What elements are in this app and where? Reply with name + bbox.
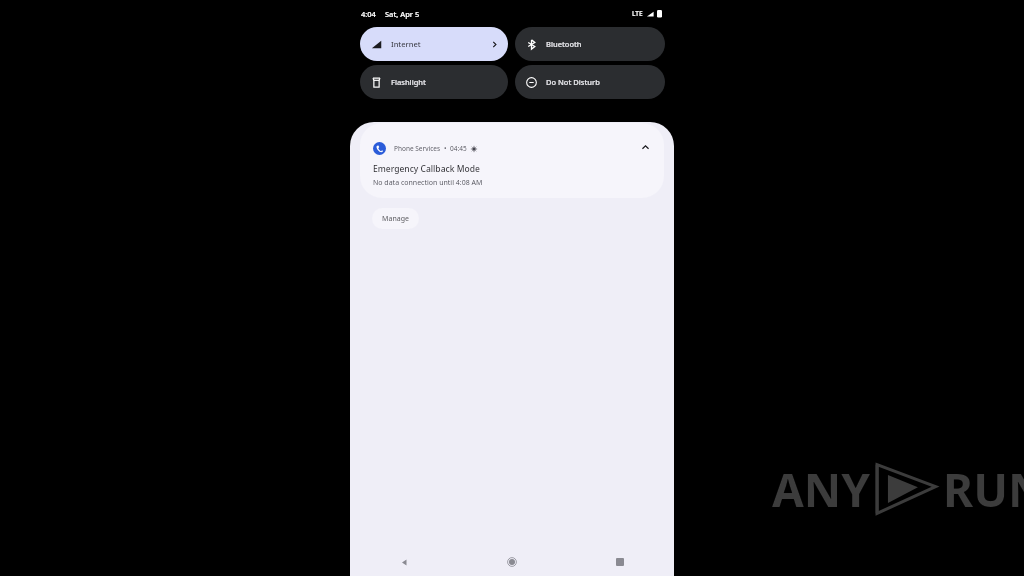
staticText: Phone Services [394, 144, 441, 153]
staticText: ANY [772, 458, 871, 520]
staticText: RUN [943, 458, 1024, 520]
staticText: Do Not Disturb [546, 77, 600, 87]
button[interactable]: Recent apps [566, 548, 674, 576]
button[interactable]: Home [458, 548, 566, 576]
button[interactable]: Do Not Disturb [515, 65, 665, 99]
staticText: Manage [382, 214, 409, 224]
button[interactable]: Back [350, 548, 458, 576]
staticText: • [444, 144, 447, 153]
staticText: No data connection until 4:08 AM [373, 178, 483, 188]
button[interactable]: Flashlight [360, 65, 508, 99]
staticText: Emergency Callback Mode [373, 163, 480, 175]
staticText: LTE [632, 9, 643, 18]
button[interactable]: Phone Services [360, 123, 664, 198]
staticText: Internet [391, 39, 421, 49]
button[interactable]: Manage [372, 208, 419, 229]
staticText: Bluetooth [546, 39, 582, 49]
staticText: 4:04 [361, 9, 376, 19]
staticText: Sat, Apr 5 [385, 9, 420, 19]
button[interactable]: Collapse notification [636, 138, 654, 156]
staticText: 04:45 [450, 144, 467, 153]
button[interactable]: Internet [360, 27, 508, 61]
staticText: Flashlight [391, 77, 426, 87]
button[interactable]: Bluetooth [515, 27, 665, 61]
